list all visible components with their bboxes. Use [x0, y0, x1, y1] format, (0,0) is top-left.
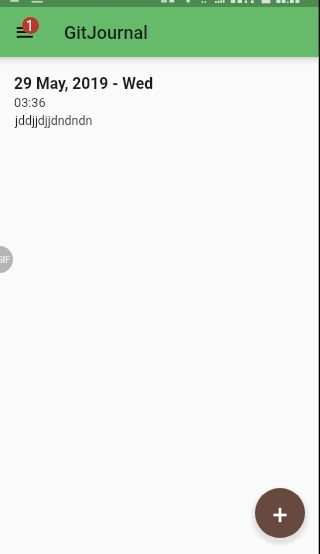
button[interactable]: GIF recorder	[0, 246, 13, 273]
staticText: GIF	[0, 255, 10, 265]
staticText: 29 May, 2019 - Wed	[14, 74, 154, 92]
staticText: GitJournal	[64, 22, 148, 43]
button[interactable]: 29 May, 2019 - Wed	[0, 64, 320, 138]
button[interactable]: New note	[255, 488, 305, 538]
staticText: 1	[26, 18, 34, 34]
button[interactable]: Open navigation drawer	[0, 7, 48, 57]
staticText: jddjjdjjdndndn	[15, 113, 93, 128]
staticText: 03:36	[14, 95, 46, 110]
